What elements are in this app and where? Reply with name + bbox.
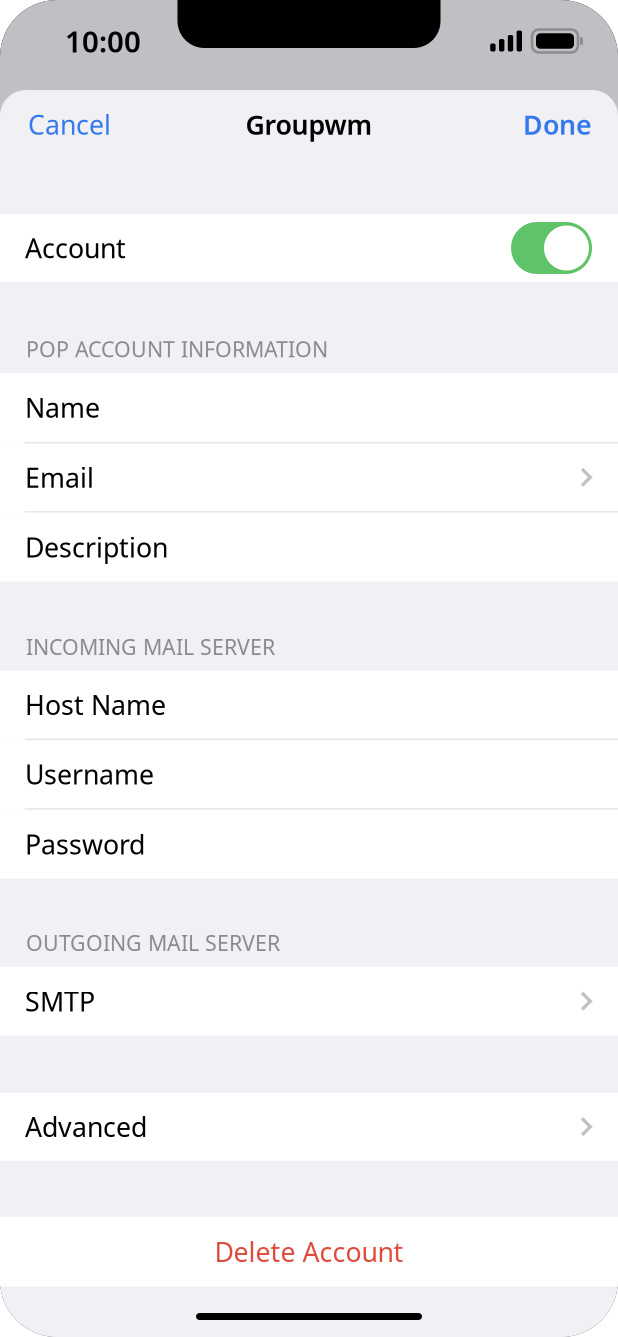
staticText: Password: [25, 826, 145, 862]
button[interactable]: Delete Account: [0, 1217, 618, 1287]
staticText: SMTP: [25, 983, 95, 1019]
staticText: Name: [25, 390, 100, 425]
button[interactable]: SMTP: [0, 967, 618, 1036]
staticText: Username: [25, 756, 154, 792]
staticText: POP ACCOUNT INFORMATION: [26, 335, 328, 363]
staticText: Advanced: [25, 1109, 147, 1144]
button[interactable]: Password: [0, 810, 618, 879]
staticText: Cancel: [28, 107, 111, 142]
button[interactable]: Advanced: [0, 1093, 618, 1161]
staticText: Groupwm: [245, 107, 372, 142]
button[interactable]: Username: [0, 740, 618, 808]
button[interactable]: Name: [0, 373, 618, 442]
staticText: INCOMING MAIL SERVER: [26, 632, 275, 661]
staticText: Description: [25, 529, 168, 565]
button[interactable]: Cancel: [28, 90, 111, 159]
button[interactable]: Account: [0, 214, 618, 282]
staticText: Account: [25, 230, 126, 266]
button[interactable]: Email: [0, 444, 618, 511]
staticText: OUTGOING MAIL SERVER: [26, 928, 280, 957]
staticText: Email: [25, 460, 94, 495]
staticText: Host Name: [25, 687, 166, 722]
button[interactable]: Description: [0, 513, 618, 582]
button[interactable]: Done: [523, 90, 592, 159]
staticText: Done: [523, 107, 592, 142]
button[interactable]: Host Name: [0, 671, 618, 739]
staticText: 10:00: [65, 21, 141, 60]
staticText: Delete Account: [214, 1234, 403, 1269]
